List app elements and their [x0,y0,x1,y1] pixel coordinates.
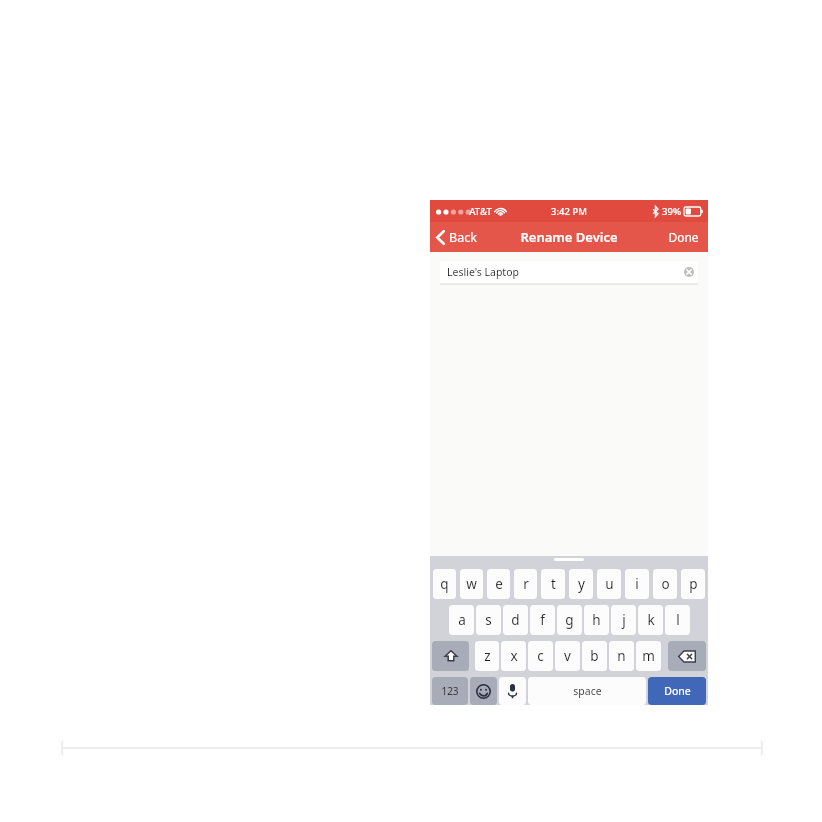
staticText: m [642,647,655,665]
button[interactable]: z [475,641,499,671]
staticText: z [484,647,491,665]
button[interactable]: y [569,569,593,599]
button[interactable]: r [514,569,537,599]
button[interactable]: d [503,605,528,635]
staticText: n [617,647,626,665]
staticText: w [466,575,477,593]
button[interactable]: u [597,569,621,599]
staticText: 39% [662,205,681,218]
button[interactable]: h [584,605,609,635]
button[interactable]: p [681,569,705,599]
staticText: h [592,611,601,629]
staticText: Done [668,229,699,245]
button[interactable]: t [541,569,565,599]
staticText: space [573,684,602,698]
staticText: d [511,611,520,629]
staticText: Back [449,229,477,246]
button[interactable]: i [625,569,649,599]
button[interactable]: Back [430,225,485,250]
button[interactable]: Done [648,677,706,705]
button[interactable]: j [611,605,636,635]
staticText: s [485,611,492,629]
button[interactable]: g [557,605,582,635]
button[interactable]: Backspace [668,641,706,671]
button[interactable]: l [665,605,690,635]
staticText: j [622,611,626,629]
button[interactable]: q [433,569,456,599]
staticText: t [551,575,556,593]
button[interactable]: n [609,641,634,671]
button[interactable]: v [555,641,580,671]
staticText: r [523,575,529,593]
staticText: a [458,611,466,629]
staticText: b [590,647,599,665]
button[interactable]: Dismiss keyboard [554,558,584,561]
staticText: e [495,575,503,593]
button[interactable]: w [460,569,483,599]
staticText: Rename Device [520,228,618,246]
button[interactable]: Emoji [470,677,497,705]
staticText: l [676,611,680,629]
staticText: o [661,575,670,593]
button[interactable]: e [487,569,510,599]
button[interactable]: Done [659,224,708,250]
staticText: Leslie's Laptop [447,265,519,279]
button[interactable]: 123 [432,677,468,705]
button[interactable]: Clear text [680,263,698,281]
staticText: v [564,647,571,665]
button[interactable]: Shift [432,641,469,671]
button[interactable]: f [530,605,555,635]
staticText: p [689,575,698,593]
button[interactable]: x [501,641,526,671]
button[interactable]: k [638,605,663,635]
button[interactable]: o [653,569,677,599]
staticText: i [635,575,639,593]
staticText: u [605,575,614,593]
staticText: k [647,611,655,629]
staticText: f [540,611,545,629]
button[interactable]: Leslie's Laptop [440,261,698,283]
button[interactable]: space [528,677,646,705]
staticText: y [578,575,585,593]
staticText: AT&T [469,205,492,218]
staticText: 3:42 PM [551,205,587,218]
button[interactable]: a [449,605,474,635]
staticText: c [537,647,544,665]
button[interactable]: c [528,641,553,671]
staticText: x [510,647,518,665]
staticText: Done [664,684,691,698]
staticText: g [565,611,574,629]
button[interactable]: s [476,605,501,635]
button[interactable]: Dictate [499,677,526,705]
button[interactable]: b [582,641,607,671]
staticText: 123 [441,684,459,698]
button[interactable]: m [636,641,661,671]
staticText: q [440,575,449,593]
